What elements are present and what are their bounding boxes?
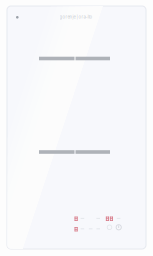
button[interactable]: Child lock (106, 224, 113, 231)
staticText: gorenje | ora-ito (59, 14, 92, 20)
button[interactable]: Power (115, 224, 122, 231)
button[interactable]: Right cooking zone slider (39, 147, 110, 157)
button[interactable]: Left cooking zone slider (39, 53, 110, 63)
